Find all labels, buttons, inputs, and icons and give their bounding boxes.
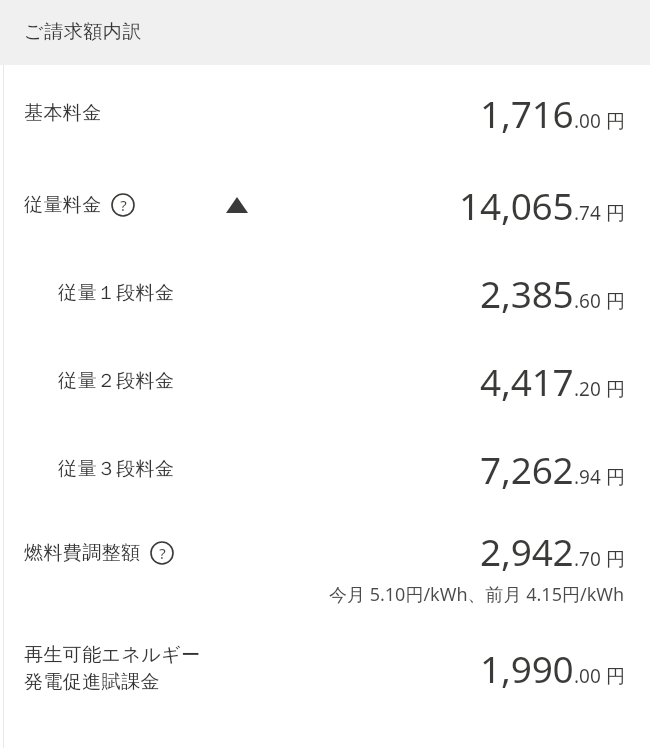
staticText: .70 [574,546,601,572]
staticText: 発電促進賦課金 [24,670,160,694]
staticText: ご請求額内訳 [24,20,143,44]
staticText: .20 [574,376,601,402]
staticText: 円 [606,202,625,226]
button[interactable]: 説明を表示 [150,541,174,565]
staticText: .60 [574,288,601,314]
staticText: 4,417 [480,356,574,406]
staticText: 円 [606,548,625,572]
staticText: 円 [606,665,625,689]
staticText: 円 [606,110,625,134]
staticText: .00 [574,108,601,134]
staticText: 2,385 [480,268,574,318]
staticText: 従量２段料金 [58,369,175,393]
staticText: 基本料金 [24,101,102,125]
button[interactable]: 基本料金 [0,65,650,161]
button[interactable]: 従量料金 [0,161,650,249]
staticText: 従量３段料金 [58,457,175,481]
staticText: 円 [606,466,625,490]
staticText: .74 [574,200,601,226]
button[interactable]: 従量１段料金 [0,249,650,337]
staticText: 円 [606,378,625,402]
staticText: 従量１段料金 [58,281,175,305]
staticText: 今月 5.10円/kWh、前月 4.15円/kWh [329,582,625,607]
button[interactable]: 説明を表示 [111,193,135,217]
button[interactable]: 従量２段料金 [0,337,650,425]
staticText: 燃料費調整額 [24,541,141,565]
staticText: .94 [574,464,601,490]
staticText: .00 [574,663,601,689]
staticText: 2,942 [480,526,574,576]
staticText: 再生可能エネルギー [24,643,201,667]
staticText: 従量料金 [24,193,102,217]
staticText: 円 [606,290,625,314]
button[interactable]: 燃料費調整額 [0,513,650,613]
staticText: 7,262 [480,444,574,494]
staticText: 14,065 [459,180,574,230]
button[interactable]: 折りたたむ [220,192,254,218]
button[interactable]: 従量３段料金 [0,425,650,513]
staticText: 1,990 [480,643,574,693]
button[interactable]: 再生可能エネルギー [0,613,650,723]
staticText: ? [120,195,127,215]
staticText: 1,716 [480,88,574,138]
staticText: ? [159,543,166,563]
